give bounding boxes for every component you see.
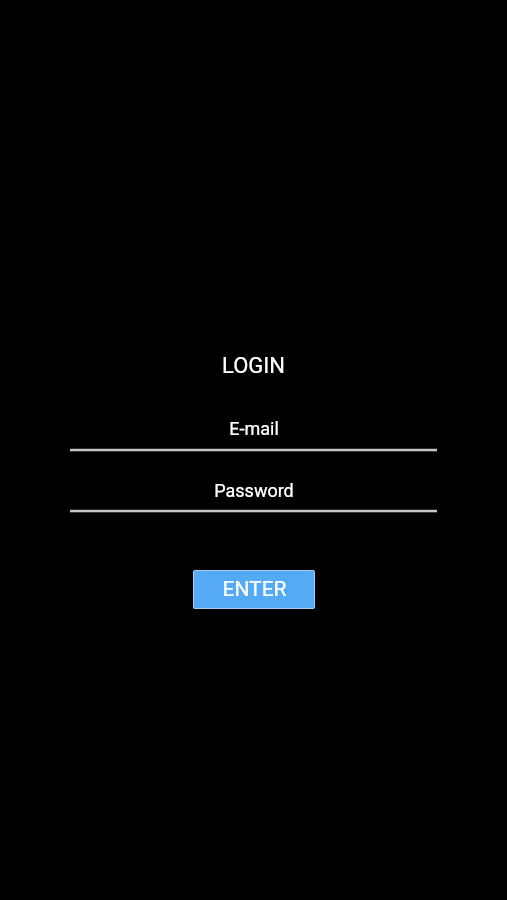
staticText: E-mail	[229, 418, 279, 439]
button[interactable]: E-mail field	[70, 418, 437, 452]
button[interactable]: Password field	[70, 480, 437, 513]
staticText: ENTER	[222, 577, 287, 602]
staticText: Password	[214, 480, 294, 501]
button[interactable]: ENTER	[194, 571, 314, 608]
staticText: LOGIN	[222, 353, 285, 379]
